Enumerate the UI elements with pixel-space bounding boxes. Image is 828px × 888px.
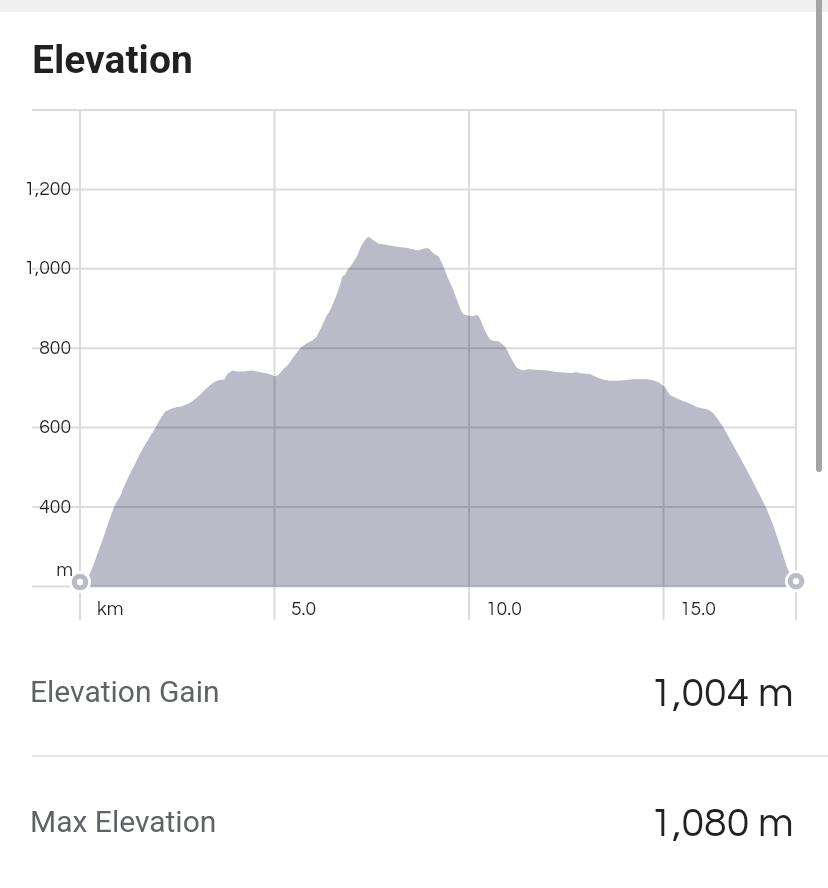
staticText: 600 xyxy=(0,417,71,437)
staticText: 400 xyxy=(0,497,71,517)
staticText: 5.0 xyxy=(291,599,317,619)
button[interactable]: Max Elevation xyxy=(0,756,828,886)
staticText: Max Elevation xyxy=(30,804,217,839)
staticText: 1,080 m xyxy=(650,802,794,844)
staticText: 800 xyxy=(0,338,71,358)
staticText: Elevation xyxy=(32,37,193,83)
staticText: 1,200 xyxy=(0,179,71,199)
staticText: 10.0 xyxy=(486,599,522,619)
staticText: Elevation Gain xyxy=(30,674,220,709)
staticText: 15.0 xyxy=(680,599,716,619)
staticText: km xyxy=(97,599,124,619)
staticText: 1,000 xyxy=(0,258,71,278)
button[interactable]: Elevation Gain xyxy=(0,625,828,755)
staticText: m xyxy=(0,560,73,580)
staticText: 1,004 m xyxy=(650,672,794,714)
